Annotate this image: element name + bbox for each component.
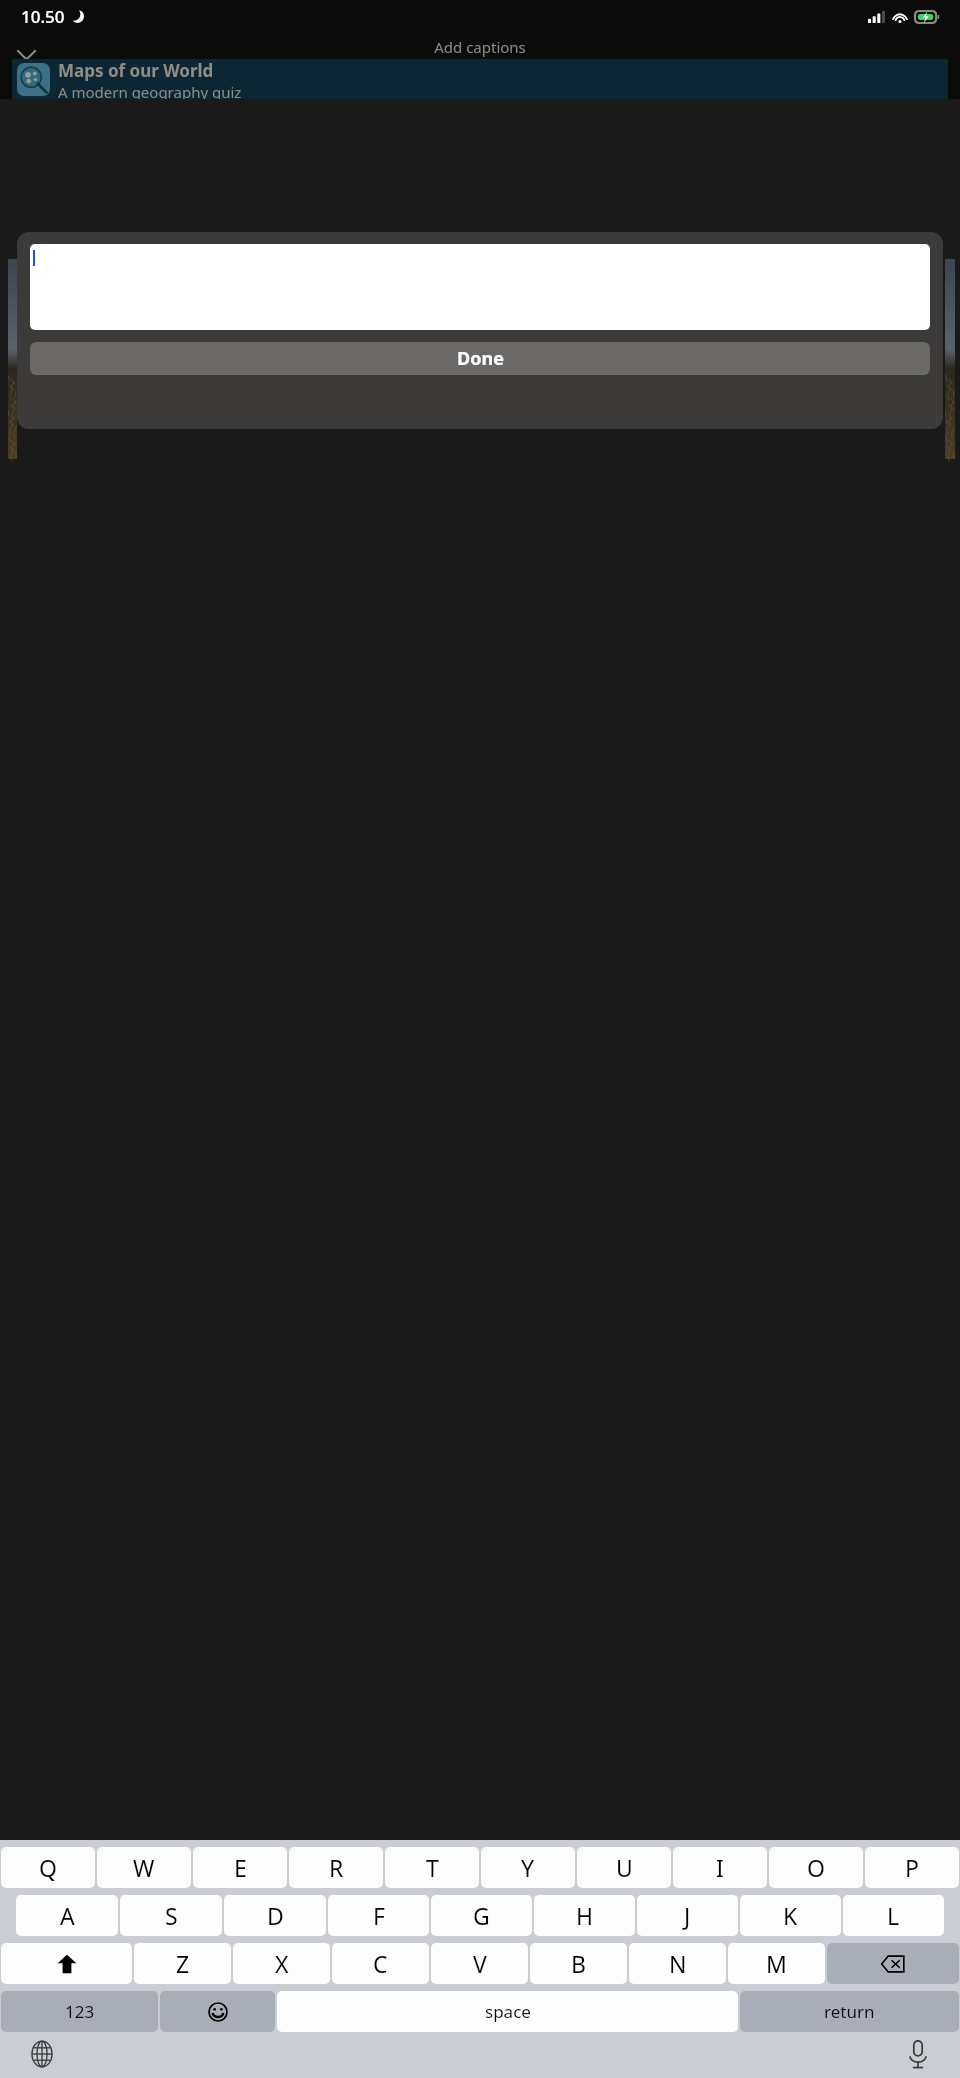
button[interactable]: return (740, 1991, 959, 2032)
staticText: G (473, 1900, 490, 1931)
button[interactable]: X (233, 1943, 330, 1984)
staticText: Z (176, 1948, 190, 1979)
staticText: J (684, 1900, 691, 1931)
staticText: S (165, 1900, 178, 1931)
button[interactable]: K (740, 1895, 841, 1936)
button[interactable]: Change keyboard language (20, 2032, 64, 2076)
staticText: A modern geography quiz (58, 82, 242, 99)
staticText: R (329, 1852, 344, 1883)
staticText: X (275, 1948, 289, 1979)
staticText: U (616, 1852, 633, 1883)
button[interactable]: H (534, 1895, 635, 1936)
staticText: H (576, 1900, 594, 1931)
staticText: K (783, 1900, 798, 1931)
staticText: Q (39, 1852, 57, 1883)
button[interactable]: B (530, 1943, 627, 1984)
staticText: B (571, 1948, 586, 1979)
button[interactable]: Shift (1, 1943, 132, 1984)
staticText: space (485, 2000, 531, 2023)
button[interactable]: Maps of our World (12, 59, 948, 99)
staticText: Done (457, 346, 504, 371)
button[interactable]: V (431, 1943, 528, 1984)
button[interactable]: Q (1, 1847, 95, 1888)
staticText: 10.50 (21, 5, 65, 28)
staticText: P (905, 1852, 919, 1883)
button[interactable]: Backspace (827, 1943, 959, 1984)
button[interactable]: F (328, 1895, 429, 1936)
button[interactable]: T (385, 1847, 479, 1888)
staticText: D (267, 1900, 284, 1931)
button[interactable]: Emoji (160, 1991, 275, 2032)
button[interactable]: Done (30, 342, 930, 375)
staticText: C (373, 1948, 388, 1979)
staticText: W (133, 1852, 155, 1883)
staticText: N (669, 1948, 687, 1979)
button[interactable]: J (637, 1895, 738, 1936)
button[interactable]: space (277, 1991, 738, 2032)
button[interactable]: R (289, 1847, 383, 1888)
staticText: return (824, 2000, 875, 2023)
staticText: I (716, 1852, 724, 1883)
button[interactable]: Close (6, 39, 46, 79)
button[interactable]: D (224, 1895, 326, 1936)
staticText: 123 (65, 2000, 95, 2023)
button[interactable]: O (769, 1847, 863, 1888)
button[interactable] (30, 244, 930, 330)
staticText: E (234, 1852, 247, 1883)
button[interactable]: N (629, 1943, 726, 1984)
button[interactable]: A (16, 1895, 118, 1936)
button[interactable]: M (728, 1943, 825, 1984)
staticText: F (373, 1900, 385, 1931)
staticText: O (807, 1852, 825, 1883)
staticText: L (887, 1900, 900, 1931)
button[interactable]: Voice input (896, 2032, 940, 2076)
staticText: Maps of our World (58, 59, 214, 82)
button[interactable]: P (865, 1847, 959, 1888)
button[interactable]: G (431, 1895, 532, 1936)
button[interactable]: E (193, 1847, 287, 1888)
button[interactable]: W (97, 1847, 191, 1888)
staticText: T (426, 1852, 439, 1883)
button[interactable]: L (843, 1895, 944, 1936)
button[interactable]: Z (134, 1943, 231, 1984)
button[interactable]: Y (481, 1847, 575, 1888)
staticText: Y (521, 1852, 535, 1883)
staticText: Add captions and images (434, 37, 526, 77)
staticText: A (60, 1900, 75, 1931)
button[interactable]: S (120, 1895, 222, 1936)
button[interactable]: I (673, 1847, 767, 1888)
button[interactable]: U (577, 1847, 671, 1888)
staticText: M (766, 1948, 787, 1979)
button[interactable]: C (332, 1943, 429, 1984)
staticText: V (473, 1948, 487, 1979)
button[interactable]: 123 (1, 1991, 158, 2032)
